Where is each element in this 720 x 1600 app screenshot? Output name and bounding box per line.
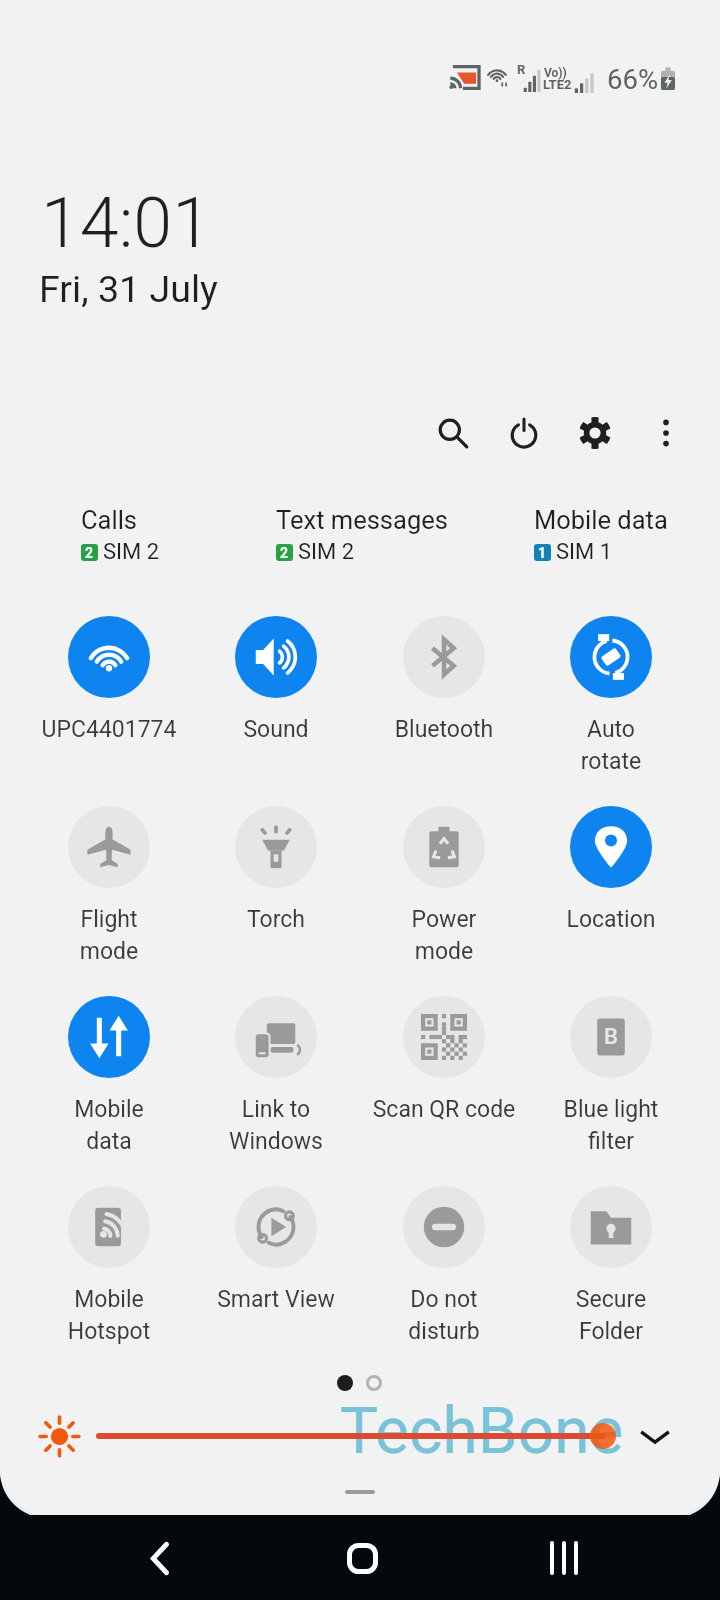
staticText: Auto rotate <box>536 716 686 774</box>
staticText: LTE2 <box>543 77 572 92</box>
button[interactable]: Auto rotate <box>536 616 686 774</box>
staticText: UPC4401774 <box>34 716 184 743</box>
staticText: Mobile data <box>534 505 668 535</box>
staticText: Scan QR code <box>369 1096 519 1123</box>
staticText: Torch <box>201 906 351 933</box>
button[interactable]: Link to Windows <box>201 996 351 1154</box>
staticText: Mobile Hotspot <box>34 1286 184 1344</box>
button[interactable]: More options <box>643 410 689 456</box>
staticText: Bluetooth <box>369 716 519 743</box>
staticText: Sound <box>201 716 351 743</box>
staticText: Calls <box>81 505 138 535</box>
button[interactable]: B <box>536 996 686 1154</box>
staticText: Power mode <box>369 906 519 964</box>
button[interactable]: Secure Folder <box>536 1186 686 1344</box>
staticText: Flight mode <box>34 906 184 964</box>
staticText: Location <box>536 906 686 933</box>
staticText: Text messages <box>276 505 448 535</box>
staticText: Smart View <box>201 1286 351 1313</box>
button[interactable]: Back <box>127 1526 191 1590</box>
staticText: 66% <box>607 63 659 95</box>
staticText: 2 <box>280 545 289 561</box>
staticText: Secure Folder <box>536 1286 686 1344</box>
button[interactable]: Power mode <box>369 806 519 964</box>
button[interactable]: UPC4401774 <box>34 616 184 743</box>
button[interactable]: Calls <box>81 505 160 565</box>
staticText: Mobile data <box>34 1096 184 1154</box>
staticText: 14:01 <box>41 182 212 264</box>
button[interactable]: Power off <box>501 410 547 456</box>
button[interactable]: Smart View <box>201 1186 351 1313</box>
staticText: 2 <box>85 545 94 561</box>
button[interactable]: Text messages <box>276 505 448 565</box>
staticText: R <box>517 62 526 77</box>
button[interactable]: Search <box>430 410 476 456</box>
button[interactable]: Expand quick settings <box>632 1414 678 1460</box>
button[interactable]: Scan QR code <box>369 996 519 1123</box>
staticText: B <box>604 1024 618 1050</box>
staticText: SIM 2 <box>298 539 355 565</box>
button[interactable]: Mobile Hotspot <box>34 1186 184 1344</box>
staticText: Do not disturb <box>369 1286 519 1344</box>
button[interactable]: Sound <box>201 616 351 743</box>
staticText: TechBone <box>340 1394 624 1469</box>
button[interactable]: Torch <box>201 806 351 933</box>
button[interactable]: Mobile data <box>34 996 184 1154</box>
button[interactable]: Do not disturb <box>369 1186 519 1344</box>
staticText: Fri, 31 July <box>39 267 218 311</box>
button[interactable]: Recent apps <box>532 1526 596 1590</box>
staticText: 1 <box>538 545 547 561</box>
staticText: Vo)) <box>544 66 567 80</box>
staticText: SIM 1 <box>556 539 613 565</box>
button[interactable]: Settings <box>572 410 618 456</box>
button[interactable]: Bluetooth <box>369 616 519 743</box>
button[interactable]: Home <box>330 1526 394 1590</box>
button[interactable]: Location <box>536 806 686 933</box>
staticText: SIM 2 <box>103 539 160 565</box>
staticText: Blue light filter <box>536 1096 686 1154</box>
button[interactable]: Flight mode <box>34 806 184 964</box>
staticText: Link to Windows <box>201 1096 351 1154</box>
button[interactable]: Mobile data <box>534 505 668 565</box>
